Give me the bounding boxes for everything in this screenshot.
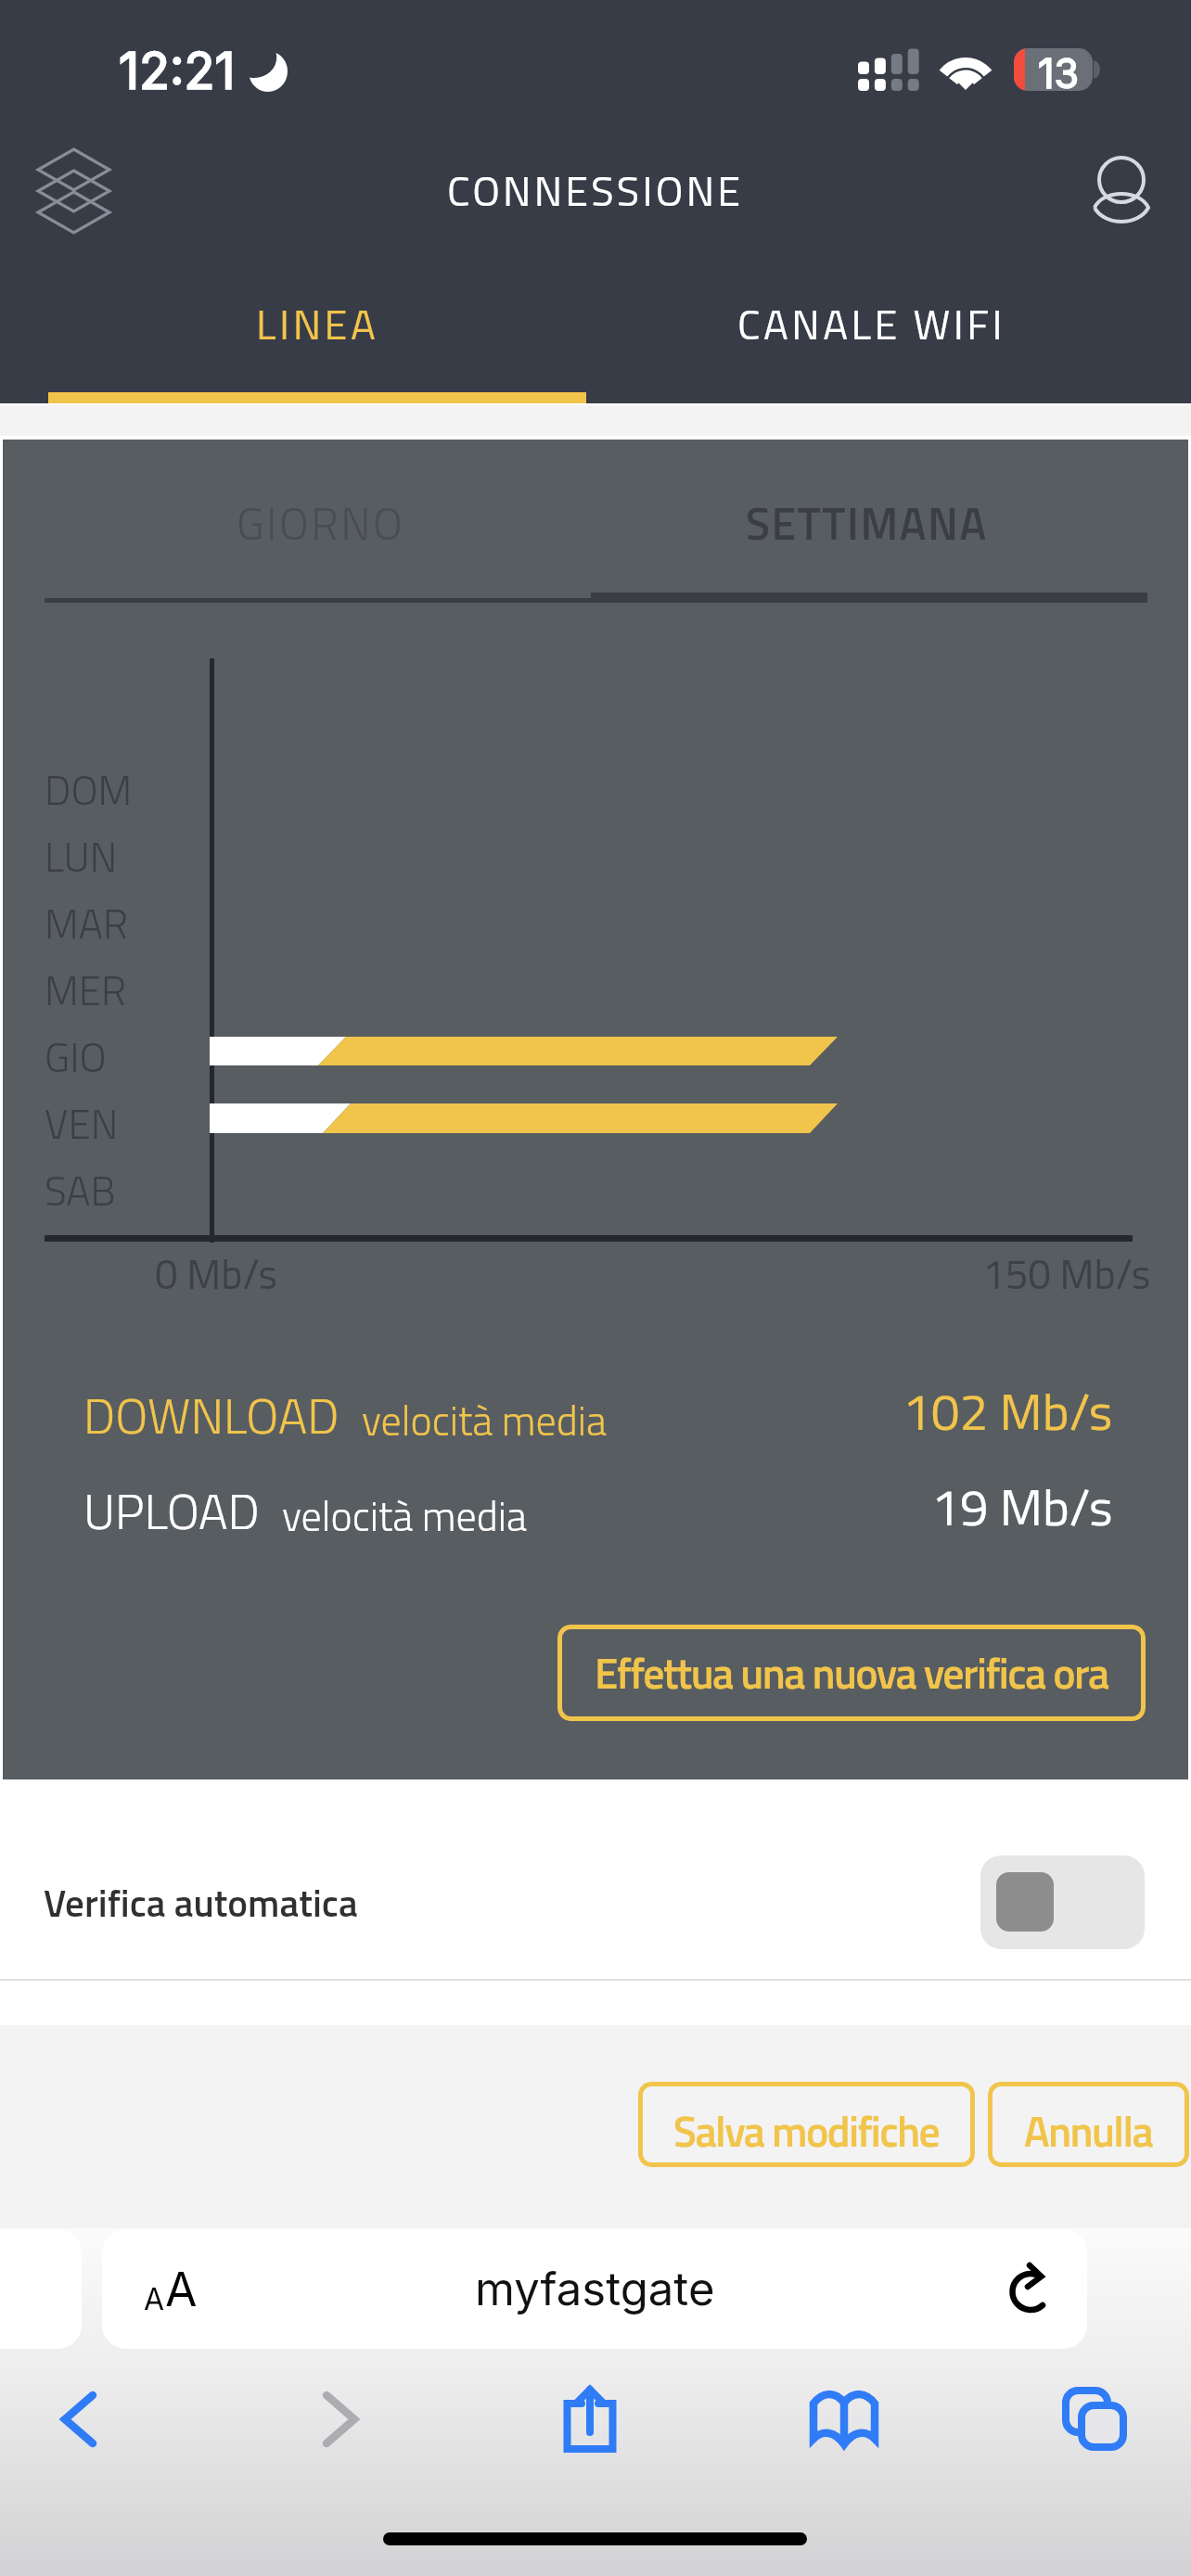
staticText: A: [165, 2262, 198, 2317]
button[interactable]: Reload page: [994, 2249, 1074, 2328]
staticText: CANALE WIFI: [737, 292, 1006, 355]
button[interactable]: myfastgate: [102, 2229, 1087, 2349]
button[interactable]: Annulla: [988, 2082, 1189, 2167]
button[interactable]: LINEA: [0, 260, 634, 403]
button[interactable]: Verifica automatica: [0, 1779, 1191, 1979]
button[interactable]: Text size options: [126, 2252, 215, 2327]
staticText: UPLOAD: [83, 1473, 260, 1549]
button[interactable]: Share: [539, 2368, 641, 2470]
staticText: velocità media: [282, 1485, 527, 1547]
button[interactable]: Bookmarks: [793, 2368, 895, 2470]
staticText: LUN: [45, 825, 118, 879]
staticText: SAB: [45, 1159, 116, 1213]
button[interactable]: Salva modifiche: [638, 2082, 975, 2167]
staticText: SETTIMANA: [746, 490, 988, 557]
staticText: 150 Mb/s: [982, 1243, 1151, 1305]
button[interactable]: CANALE WIFI: [553, 260, 1191, 403]
staticText: 19 Mb/s: [931, 1468, 1113, 1546]
staticText: GIO: [45, 1026, 107, 1079]
staticText: 102 Mb/s: [903, 1372, 1113, 1450]
staticText: LINEA: [256, 292, 379, 355]
staticText: 0 Mb/s: [155, 1243, 277, 1305]
button[interactable]: Tabs: [1044, 2368, 1146, 2470]
button[interactable]: Forward: [289, 2368, 391, 2470]
button[interactable]: Back: [28, 2368, 130, 2470]
staticText: GIORNO: [237, 490, 405, 557]
button[interactable]: Menu layers: [20, 140, 130, 242]
button[interactable]: Profile: [1080, 147, 1163, 236]
staticText: A: [144, 2281, 165, 2317]
staticText: velocità media: [362, 1389, 607, 1451]
staticText: MAR: [45, 892, 128, 946]
staticText: DOM: [45, 759, 133, 812]
staticText: 12:21: [119, 41, 236, 101]
button[interactable]: Verifica automatica: [980, 1855, 1145, 1949]
staticText: Verifica automatica: [44, 1874, 358, 1932]
staticText: Effettua una nuova verifica ora: [595, 1640, 1108, 1705]
button[interactable]: GIORNO: [3, 440, 639, 606]
button[interactable]: SETTIMANA: [539, 440, 1191, 606]
staticText: 13: [1038, 49, 1080, 97]
staticText: MER: [45, 959, 127, 1013]
button[interactable]: Effettua una nuova verifica ora: [557, 1625, 1146, 1721]
staticText: DOWNLOAD: [83, 1378, 339, 1453]
staticText: Annulla: [1024, 2098, 1153, 2163]
staticText: myfastgate: [475, 2262, 715, 2316]
staticText: VEN: [45, 1092, 119, 1146]
staticText: CONNESSIONE: [447, 159, 744, 222]
staticText: Salva modifiche: [673, 2098, 940, 2163]
